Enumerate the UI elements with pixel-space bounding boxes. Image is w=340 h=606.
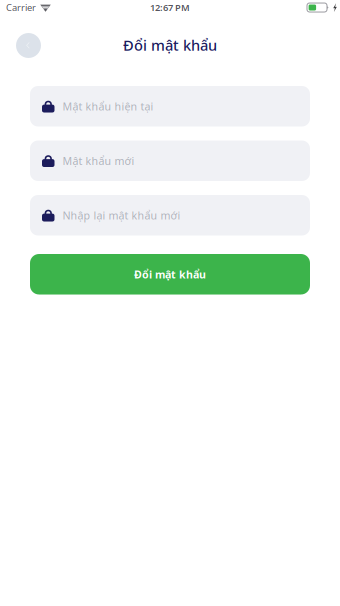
button[interactable]: Mật khẩu mới	[30, 140, 310, 181]
button[interactable]: Mật khẩu hiện tại	[30, 86, 310, 126]
staticText: Nhập lại mật khẩu mới	[62, 208, 180, 222]
staticText: Mật khẩu mới	[62, 154, 134, 168]
button[interactable]: Nhập lại mật khẩu mới	[30, 195, 310, 235]
button[interactable]: Đổi mật khẩu	[30, 254, 310, 294]
button[interactable]: Back	[16, 32, 41, 58]
staticText: 12:67 PM	[150, 1, 190, 14]
staticText: Đổi mật khẩu	[134, 267, 206, 281]
staticText: Đổi mật khẩu	[123, 35, 217, 55]
staticText: Mật khẩu hiện tại	[62, 99, 153, 113]
staticText: Carrier	[6, 1, 36, 14]
